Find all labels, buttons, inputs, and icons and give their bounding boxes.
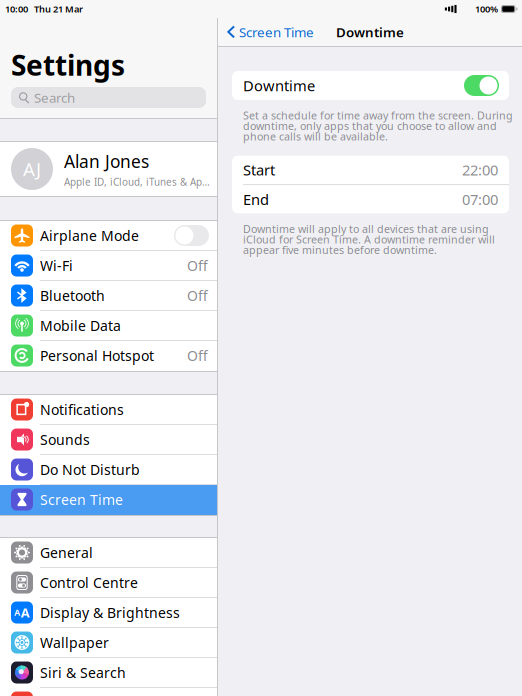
button[interactable]: Sounds <box>0 425 217 455</box>
staticText: Siri & Search <box>40 663 126 682</box>
staticText: Sounds <box>40 430 90 449</box>
button[interactable]: Mobile Data <box>0 311 217 341</box>
staticText: Off <box>187 286 208 305</box>
staticText: A <box>21 604 30 621</box>
staticText: 22:00 <box>462 160 498 180</box>
staticText: Notifications <box>40 400 124 419</box>
button[interactable]: Screen Time <box>0 485 217 515</box>
staticText: End <box>243 189 269 209</box>
button[interactable]: Notifications <box>0 395 217 425</box>
staticText: AJ <box>23 156 41 182</box>
staticText: Wallpaper <box>40 633 109 652</box>
staticText: Personal Hotspot <box>40 346 154 365</box>
button[interactable]: General <box>0 538 217 568</box>
button[interactable]: A <box>0 598 217 628</box>
button[interactable]: Siri & Search <box>0 658 217 688</box>
staticText: Screen Time <box>239 23 314 41</box>
button[interactable]: AJ <box>0 142 217 196</box>
staticText: General <box>40 543 93 562</box>
staticText: 100% <box>475 3 498 15</box>
staticText: Apple ID, iCloud, iTunes & App St… <box>64 175 212 188</box>
staticText: Screen Time <box>40 490 123 509</box>
button[interactable]: Screen Time <box>218 18 314 46</box>
button[interactable]: Downtime <box>232 71 509 100</box>
staticText: Display & Brightness <box>40 603 180 622</box>
staticText: Alan Jones <box>64 149 149 173</box>
staticText: Wi-Fi <box>40 256 73 275</box>
staticText: Bluetooth <box>40 286 105 305</box>
button[interactable]: Touch ID & Passcode <box>0 688 217 696</box>
staticText: Downtime will apply to all devices that … <box>243 222 495 257</box>
staticText: Off <box>187 346 208 365</box>
button[interactable]: Bluetooth <box>0 281 217 311</box>
button[interactable]: Search <box>11 87 206 108</box>
staticText: 07:00 <box>462 189 498 209</box>
button[interactable]: Do Not Disturb <box>0 455 217 485</box>
staticText: Off <box>187 256 208 275</box>
staticText: Search <box>34 88 75 107</box>
staticText: Start <box>243 160 275 180</box>
staticText: A <box>14 607 20 618</box>
button[interactable]: Wi-Fi <box>0 251 217 281</box>
staticText: Thu 21 Mar <box>34 3 83 15</box>
button[interactable]: Wallpaper <box>0 628 217 658</box>
staticText: 10:00 <box>5 3 28 15</box>
staticText: Airplane Mode <box>40 226 139 245</box>
staticText: Downtime <box>336 23 404 41</box>
button[interactable]: Personal Hotspot <box>0 341 217 371</box>
staticText: Downtime <box>243 75 315 95</box>
staticText: Set a schedule for time away from the sc… <box>243 108 513 144</box>
button[interactable]: End <box>232 185 509 214</box>
staticText: Do Not Disturb <box>40 460 140 479</box>
button[interactable]: Start <box>232 156 509 184</box>
staticText: Control Centre <box>40 573 138 592</box>
staticText: Mobile Data <box>40 316 121 335</box>
button[interactable]: Control Centre <box>0 568 217 598</box>
button[interactable]: Airplane Mode <box>0 221 217 251</box>
staticText: Settings <box>11 46 125 84</box>
